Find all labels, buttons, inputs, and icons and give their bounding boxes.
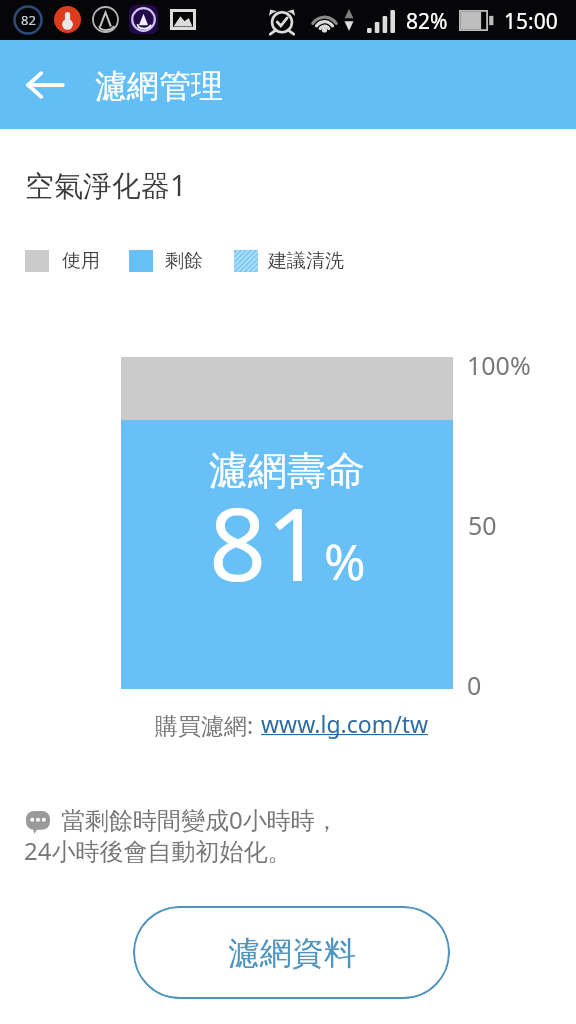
staticText: www.lg.com/tw — [261, 708, 429, 739]
staticText: 24小時後會自動初始化。 — [24, 834, 292, 867]
staticText: 濾網壽命 — [209, 446, 365, 495]
staticText: 使用 — [62, 249, 100, 273]
staticText: 購買濾網: — [155, 709, 254, 740]
button[interactable]: Back — [8, 40, 82, 129]
staticText: 81 — [209, 474, 324, 610]
staticText: 建議清洗 — [268, 249, 344, 273]
staticText: 50 — [468, 508, 497, 542]
button[interactable]: www.lg.com/tw — [261, 706, 446, 744]
staticText: 0 — [467, 668, 482, 702]
staticText: 濾網管理 — [95, 66, 223, 106]
staticText: 82% — [406, 7, 448, 36]
staticText: 82 — [21, 11, 36, 29]
staticText: % — [324, 527, 366, 595]
staticText: 100% — [467, 348, 531, 382]
staticText: 15:00 — [504, 7, 558, 36]
staticText: 剩餘 — [165, 249, 203, 273]
staticText: 空氣淨化器1 — [25, 165, 187, 205]
staticText: 當剩餘時間變成0小時時， — [61, 803, 339, 836]
staticText: 濾網資料 — [228, 933, 356, 973]
button[interactable]: 濾網資料 — [133, 906, 450, 999]
